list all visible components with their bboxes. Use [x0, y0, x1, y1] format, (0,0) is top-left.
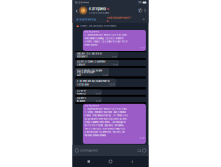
staticText: ❀: [106, 7, 109, 11]
staticText: 16:43: [139, 47, 144, 49]
staticText: 79%: [138, 1, 142, 4]
staticText: 16:46: [96, 100, 101, 102]
staticText: 16:47: [139, 137, 144, 139]
staticText: ✆: [138, 8, 142, 13]
staticText: Ещё и хамить вздумали!: [77, 69, 103, 72]
button[interactable]: Back: [74, 5, 79, 16]
staticText: по Почту России, видимо, поставить,: [84, 124, 124, 127]
staticText: С возможностью читать? Где я об этом…: [84, 33, 128, 36]
staticText: так в очереди, если вообще найдется,: [84, 127, 125, 130]
staticText: Катерина: [84, 104, 99, 107]
staticText: 10:24: [75, 1, 83, 4]
staticText: 16:44: [103, 74, 108, 77]
staticText: ресторанов: [77, 83, 89, 86]
button[interactable]: В КОНТАКТЫ: [75, 16, 97, 23]
staticText: Катерина: [84, 30, 99, 33]
staticText: ❏: [138, 148, 141, 153]
button[interactable]: ЗАБЛОКИРОВАТЬ: [105, 16, 133, 23]
staticText: С возможностью читать? Где я об этом…: [84, 107, 128, 110]
button[interactable]: Emoji: [75, 149, 78, 152]
staticText: Я проверяла водоснабжение из: [77, 80, 110, 83]
staticText: Идите со своим развитием дальше!: [77, 60, 106, 66]
staticText: ‹: [131, 158, 133, 165]
staticText: 16:44: [113, 64, 118, 66]
staticText: Идите к арбитру!: [77, 96, 86, 102]
button[interactable]: Camera: [143, 149, 146, 152]
staticText: ЗАБЛОКИРОВАТЬ: [107, 16, 132, 23]
staticText: Узнайте, как распознать мошенников: [80, 25, 116, 27]
button[interactable]: Home: [105, 156, 116, 167]
staticText: Хотите, скажу, где живу я? Вам что от: [84, 40, 127, 43]
button[interactable]: Call: [137, 5, 143, 16]
button[interactable]: Dismiss: [141, 16, 146, 23]
staticText: ранее, моральный вред. И теперь Вы: [84, 114, 128, 117]
staticText: была в сети давно: [89, 11, 110, 14]
staticText: ▲: [76, 24, 79, 28]
staticText: Мне какая разница, где Вы живете?: [84, 37, 123, 40]
staticText: Сообщение: [80, 149, 98, 152]
staticText: В КОНТАКТЫ: [76, 18, 95, 21]
staticText: ✕: [142, 18, 145, 21]
staticText: 16:45: [110, 84, 115, 86]
staticText: и воду-анализ потратить - на площадку: [84, 121, 125, 124]
staticText: 16:45: [96, 93, 101, 95]
button[interactable]: More options: [143, 5, 147, 16]
button[interactable]: Attach: [137, 146, 141, 154]
staticText: меня нужно?: [84, 43, 97, 46]
button[interactable]: Back: [127, 156, 138, 167]
staticText: предлагаете мне еще потратить время: [84, 117, 126, 120]
staticText: ‹: [75, 7, 77, 14]
staticText: У меня, помимо убытков, как я писала: [84, 111, 125, 114]
staticText: 16:43: [112, 56, 117, 58]
staticText: Мадам! Вы берега не попутали???: [77, 52, 102, 58]
staticText: негатив полной копией.: [84, 134, 106, 137]
staticText: Катерина: [89, 6, 106, 11]
staticText: работающая странными, чернеть так: [84, 130, 124, 133]
staticText: Брав не меняется: [77, 89, 86, 95]
button[interactable]: Recent apps: [83, 156, 94, 167]
staticText: Вода не исчезает унет!: [77, 71, 95, 77]
